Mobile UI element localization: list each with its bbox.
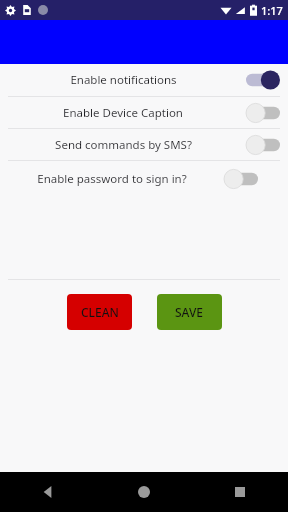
button[interactable]: Recent apps [192, 472, 288, 512]
button[interactable]: Enable Device Caption [0, 97, 288, 128]
button[interactable]: On [246, 70, 280, 90]
staticText: CLEAN [81, 304, 119, 320]
staticText: Enable notifications [70, 72, 177, 88]
staticText: Send commands by SMS? [55, 137, 192, 153]
button[interactable]: SAVE [157, 294, 222, 330]
button[interactable]: Off [224, 169, 258, 189]
staticText: Enable Device Caption [63, 105, 183, 121]
staticText: 1:17 [261, 3, 283, 18]
button[interactable]: Off [246, 135, 280, 155]
staticText: SAVE [175, 304, 204, 320]
button[interactable]: Enable password to sign in? [0, 162, 288, 196]
button[interactable]: Send commands by SMS? [0, 129, 288, 160]
button[interactable]: Enable notifications [0, 64, 288, 96]
button[interactable]: Home [96, 472, 192, 512]
staticText: Enable password to sign in? [37, 171, 187, 187]
button[interactable]: Off [246, 103, 280, 123]
button[interactable]: Back [0, 472, 96, 512]
button[interactable]: CLEAN [67, 294, 132, 330]
